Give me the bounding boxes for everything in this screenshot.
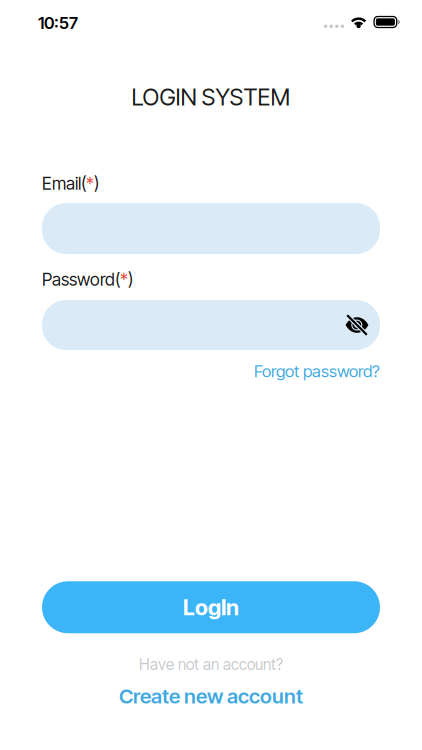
staticText: 10:57 <box>38 13 78 33</box>
staticText: Email( <box>42 173 86 194</box>
button[interactable]: LogIn <box>42 581 380 633</box>
button[interactable]: Create new account <box>119 684 303 708</box>
staticText: LOGIN SYSTEM <box>131 83 290 111</box>
staticText: ) <box>128 269 133 290</box>
staticText: LogIn <box>183 594 239 621</box>
button[interactable]: Show password <box>334 301 380 349</box>
staticText: Forgot password? <box>254 361 380 381</box>
button[interactable]: Email <box>42 203 380 254</box>
staticText: * <box>120 269 128 290</box>
button[interactable]: Password <box>42 300 380 350</box>
button[interactable]: Forgot password? <box>254 361 380 381</box>
staticText: Have not an account? <box>139 655 283 674</box>
staticText: Password( <box>42 269 120 290</box>
staticText: Create new account <box>119 684 303 708</box>
staticText: * <box>86 173 94 194</box>
staticText: ) <box>94 173 99 194</box>
